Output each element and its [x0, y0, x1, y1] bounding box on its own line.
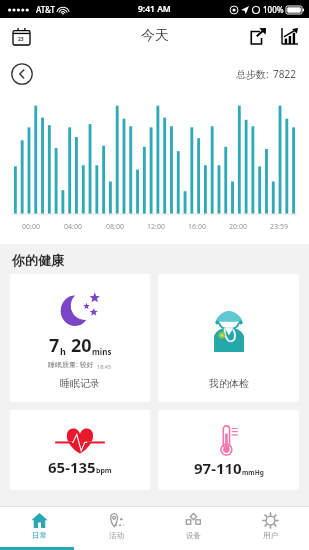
- staticText: 65-135: [48, 457, 96, 477]
- button[interactable]: Statistics: [279, 25, 301, 47]
- staticText: 睡眠质量: 较好: [48, 360, 94, 370]
- staticText: 我的体检: [209, 377, 249, 390]
- staticText: 18:45: [97, 363, 112, 370]
- staticText: 用户: [263, 531, 278, 540]
- staticText: 12:00: [147, 222, 165, 232]
- staticText: AT&T: [36, 4, 55, 15]
- staticText: 7: [49, 333, 60, 358]
- staticText: 你的健康: [12, 252, 64, 268]
- button[interactable]: 日常: [0, 507, 78, 547]
- button[interactable]: 用户: [232, 507, 309, 547]
- button[interactable]: 设备: [155, 507, 232, 547]
- staticText: 今天: [141, 27, 169, 45]
- button[interactable]: Back: [11, 63, 33, 85]
- staticText: 日常: [32, 531, 47, 540]
- staticText: 20: [71, 333, 92, 358]
- button[interactable]: 7: [10, 274, 150, 402]
- staticText: mins: [92, 346, 112, 357]
- staticText: 23:59: [270, 222, 288, 232]
- staticText: 设备: [186, 531, 201, 540]
- staticText: 23: [18, 36, 24, 43]
- staticText: 08:00: [106, 222, 124, 232]
- button[interactable]: 97-110: [158, 410, 299, 490]
- staticText: 9:41 AM: [138, 3, 171, 15]
- staticText: 97-110: [194, 458, 242, 478]
- button[interactable]: Share: [247, 25, 269, 47]
- button[interactable]: 活动: [78, 507, 155, 547]
- staticText: 总步数:: [236, 67, 269, 81]
- staticText: 100%: [263, 4, 284, 15]
- button[interactable]: 65-135: [10, 410, 150, 490]
- staticText: 睡眠记录: [60, 377, 100, 390]
- staticText: h: [60, 345, 66, 357]
- staticText: 20:00: [229, 222, 247, 232]
- button[interactable]: 我的体检: [158, 274, 299, 402]
- staticText: mmHg: [242, 468, 264, 477]
- button[interactable]: Calendar: [10, 25, 32, 47]
- staticText: 活动: [109, 531, 124, 540]
- staticText: 04:00: [64, 222, 82, 232]
- staticText: 00:00: [22, 222, 40, 232]
- staticText: 7822: [273, 67, 296, 81]
- staticText: 16:00: [188, 222, 206, 232]
- staticText: bpm: [96, 466, 112, 476]
